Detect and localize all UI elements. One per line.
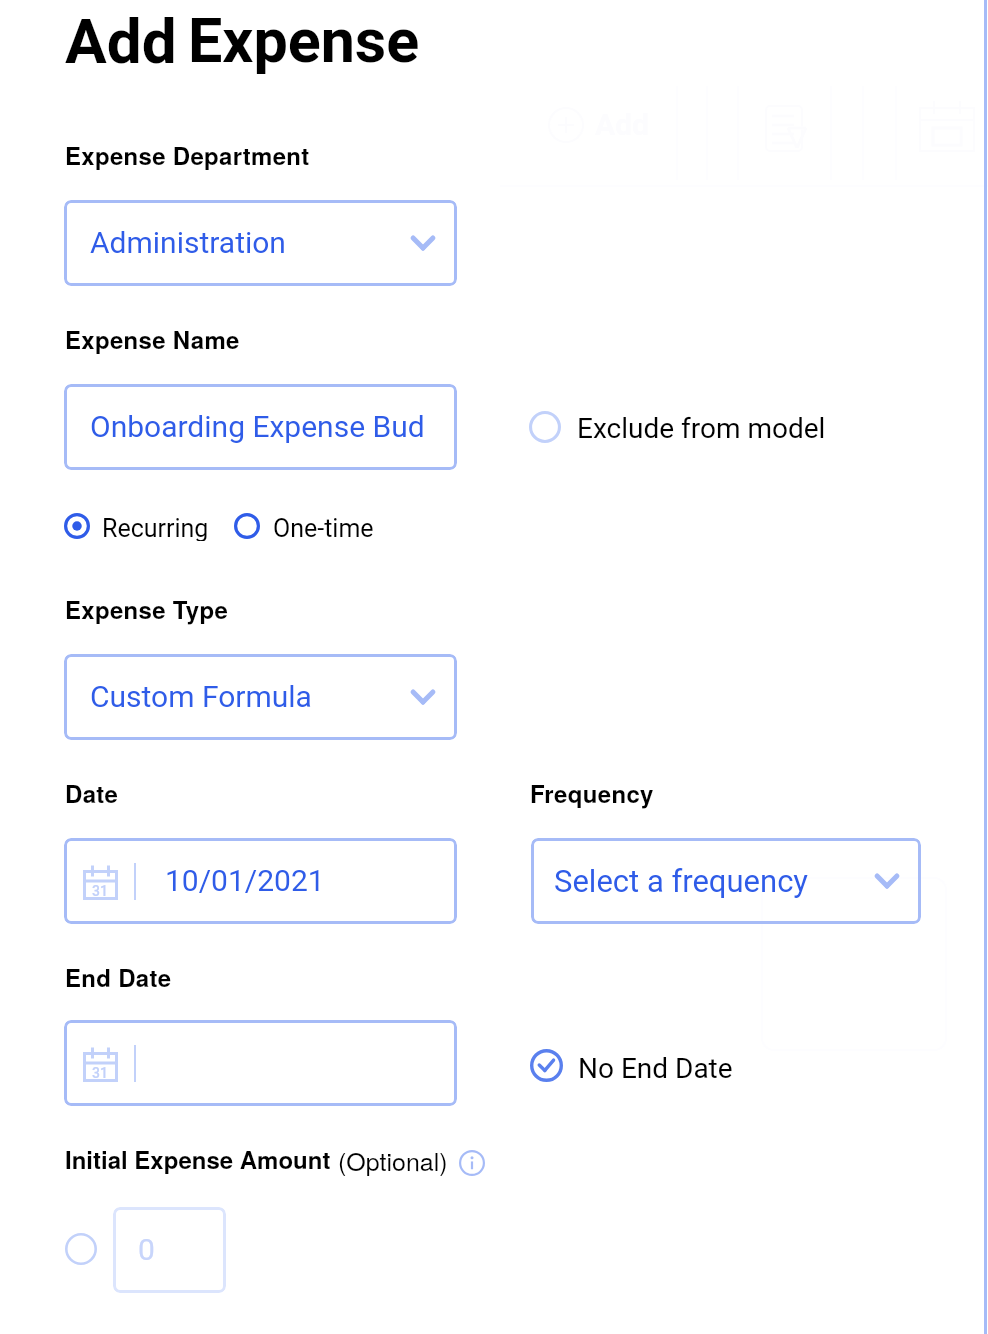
button[interactable]: Custom Formula [64, 654, 457, 740]
staticText: Expense Department [65, 138, 310, 172]
staticText: (Optional) [338, 1142, 448, 1178]
staticText: Expense Type [65, 592, 229, 626]
staticText: No End Date [578, 1052, 733, 1085]
button[interactable]: No End Date [530, 1049, 755, 1082]
staticText: Frequency [530, 776, 654, 810]
staticText: 31 [92, 1065, 108, 1081]
button[interactable]: One-time [234, 513, 379, 540]
staticText: Custom Formula [90, 679, 312, 714]
button[interactable]: Administration [64, 200, 457, 286]
staticText: Expense Name [65, 322, 240, 356]
button[interactable]: Recurring [64, 513, 209, 540]
staticText: Expense [188, 5, 420, 76]
staticText: Initial Expense Amount [65, 1142, 331, 1176]
staticText: Date [65, 776, 119, 810]
staticText: 31 [92, 883, 108, 899]
button[interactable] [65, 1233, 97, 1265]
button[interactable]: Select a frequency [531, 838, 921, 924]
button[interactable]: Onboarding Expense Bud [64, 384, 457, 470]
staticText: 10/01/2021 [165, 863, 325, 898]
staticText: Onboarding Expense Bud [90, 409, 425, 444]
button[interactable]: 0 [113, 1207, 226, 1293]
button[interactable]: More information [459, 1150, 485, 1176]
button[interactable]: 31 [64, 1020, 457, 1106]
staticText: Administration [90, 225, 286, 260]
button[interactable]: Exclude from model [529, 409, 829, 444]
button[interactable]: 31 [64, 838, 457, 924]
staticText: One-time [273, 514, 374, 541]
staticText: 0 [138, 1232, 155, 1267]
staticText: Add [65, 5, 177, 78]
staticText: Exclude from model [577, 412, 826, 445]
staticText: End Date [65, 960, 172, 994]
staticText: Select a frequency [554, 863, 809, 899]
staticText: Recurring [102, 514, 209, 541]
